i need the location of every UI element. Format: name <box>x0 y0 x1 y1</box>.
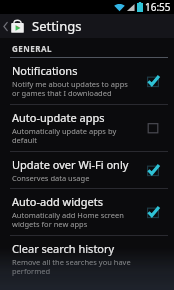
staticText: Remove all the searches you have perform… <box>12 257 131 277</box>
staticText: Auto-add widgets <box>12 194 104 209</box>
staticText: Settings <box>32 17 82 35</box>
staticText: GENERAL <box>12 43 53 54</box>
button[interactable]: Update over Wi-Fi only <box>0 152 174 188</box>
staticText: Notifications <box>12 63 78 78</box>
staticText: Notify me about updates to apps or games… <box>12 79 128 99</box>
button[interactable]: Auto-add widgets <box>140 199 166 225</box>
staticText: Automatically update apps by default <box>12 126 117 146</box>
button[interactable]: Back <box>0 14 27 38</box>
button[interactable]: Notifications <box>0 58 174 104</box>
staticText: Clear search history <box>12 241 115 256</box>
staticText: Conserves data usage <box>12 173 90 183</box>
button[interactable]: Clear search history <box>0 236 174 282</box>
button[interactable]: Auto-add widgets <box>0 189 174 235</box>
staticText: 16:55 <box>145 0 171 14</box>
staticText: Update over Wi-Fi only <box>12 157 129 172</box>
staticText: Automatically add Home screen widgets fo… <box>12 210 124 230</box>
button[interactable]: Auto-update apps <box>140 115 166 141</box>
button[interactable]: Notifications <box>140 68 166 94</box>
button[interactable]: Update over Wi-Fi only <box>140 157 166 183</box>
staticText: Auto-update apps <box>12 110 105 125</box>
button[interactable]: Auto-update apps <box>0 105 174 151</box>
